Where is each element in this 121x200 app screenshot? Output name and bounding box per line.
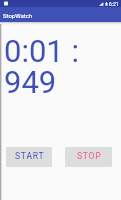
button[interactable]: START [6, 147, 52, 167]
staticText: START [15, 151, 45, 161]
staticText: STOP [77, 151, 102, 161]
staticText: 0:01 : [4, 33, 79, 69]
button[interactable]: STOP [65, 147, 112, 167]
staticText: 949 [4, 64, 57, 100]
staticText: StopWatch [3, 12, 33, 19]
staticText: 6:21 [109, 1, 119, 7]
